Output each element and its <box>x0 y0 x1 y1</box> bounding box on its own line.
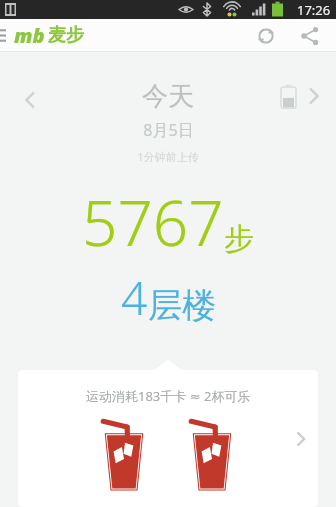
staticText: 1分钟前上传 <box>137 149 199 164</box>
button[interactable]: Share <box>292 19 328 52</box>
button[interactable]: Sync <box>248 19 284 52</box>
button[interactable]: Next day <box>296 78 332 114</box>
staticText: 5767 <box>82 180 224 264</box>
staticText: 麦步 <box>48 24 84 47</box>
button[interactable]: Previous day <box>10 80 50 120</box>
staticText: 层楼 <box>148 284 216 327</box>
staticText: 17:26 <box>297 1 331 19</box>
button[interactable]: Menu <box>0 19 14 52</box>
staticText: 4 <box>121 266 148 329</box>
staticText: 8月5日 <box>143 119 194 141</box>
staticText: 今天 <box>142 80 194 113</box>
button[interactable]: 运动消耗183千卡 ≈ 2杯可乐 <box>18 370 318 507</box>
button[interactable]: More details <box>284 422 318 456</box>
staticText: 运动消耗183千卡 ≈ 2杯可乐 <box>86 387 251 405</box>
staticText: 步 <box>224 220 254 258</box>
staticText: mb <box>14 22 45 49</box>
